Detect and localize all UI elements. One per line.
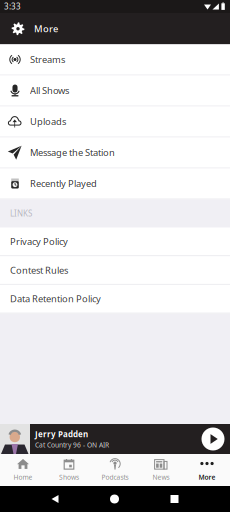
button[interactable]: Data Retention Policy	[0, 285, 230, 314]
button[interactable]: Podcasts	[92, 454, 138, 486]
staticText: Data Retention Policy	[10, 293, 101, 305]
button[interactable]: Streams	[0, 44, 230, 75]
staticText: Jerry Padden	[35, 429, 88, 439]
staticText: News	[152, 473, 169, 482]
staticText: Streams	[30, 53, 65, 66]
button[interactable]: Settings	[9, 20, 27, 38]
staticText: Contest Rules	[10, 264, 68, 276]
staticText: Shows	[59, 473, 79, 482]
staticText: Privacy Policy	[10, 235, 68, 248]
button[interactable]: Play	[199, 424, 227, 454]
staticText: Recently Played	[30, 177, 97, 190]
button[interactable]: More	[184, 454, 230, 486]
button[interactable]: Uploads	[0, 106, 230, 137]
staticText: Message the Station	[30, 146, 115, 159]
button[interactable]: Recently Played	[0, 168, 230, 199]
button[interactable]: Message the Station	[0, 137, 230, 168]
button[interactable]: Shows	[46, 454, 92, 486]
button[interactable]: Privacy Policy	[0, 227, 230, 256]
button[interactable]: Home	[0, 454, 46, 486]
staticText: Podcasts	[101, 473, 128, 482]
staticText: Home	[13, 473, 32, 482]
staticText: LINKS	[10, 208, 32, 219]
button[interactable]: All Shows	[0, 75, 230, 106]
button[interactable]: News	[138, 454, 184, 486]
staticText: More	[34, 23, 58, 35]
staticText: Cat Country 96 - ON AIR	[35, 440, 109, 449]
button[interactable]: Contest Rules	[0, 256, 230, 285]
staticText: 3:33	[4, 1, 21, 12]
staticText: Uploads	[30, 115, 66, 128]
staticText: More	[198, 473, 215, 482]
staticText: All Shows	[30, 84, 69, 97]
